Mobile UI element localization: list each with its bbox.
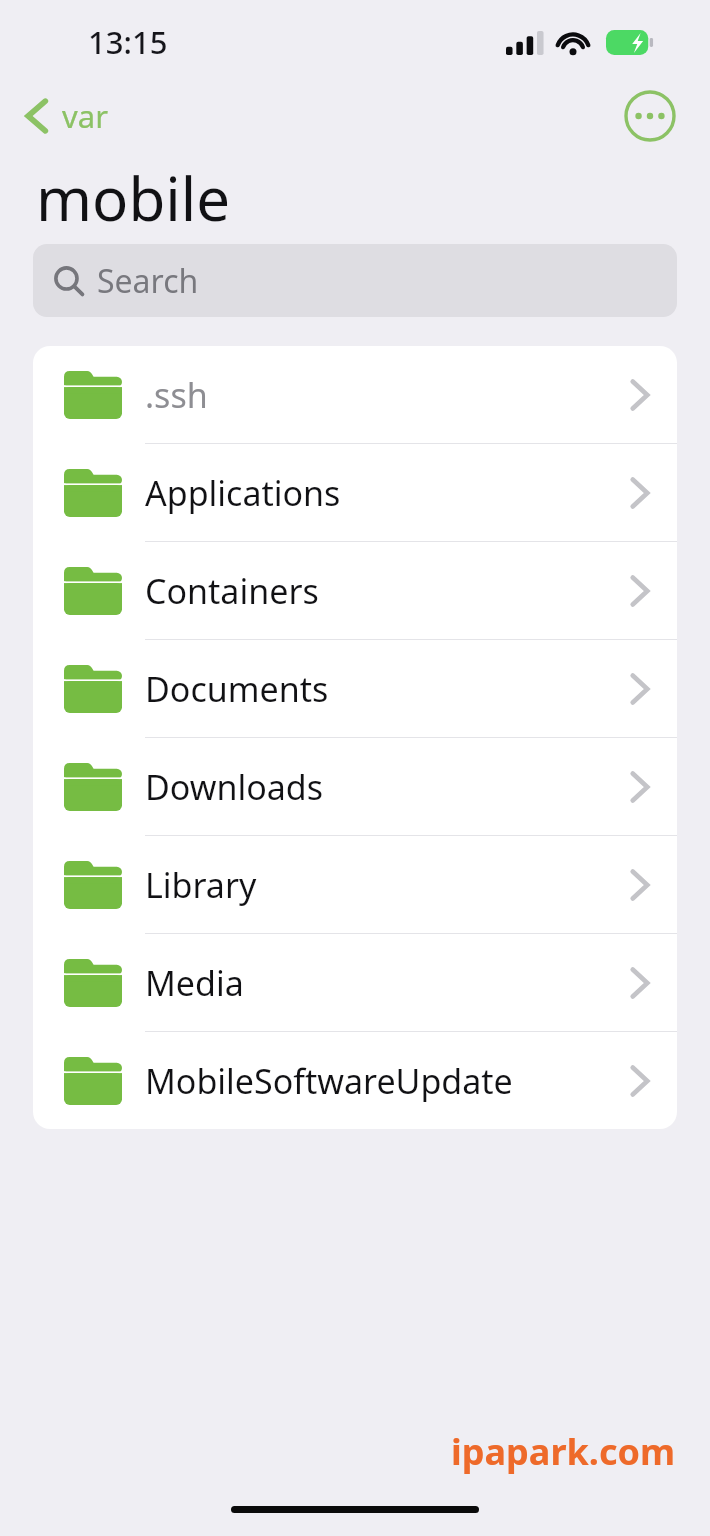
button[interactable]: Applications bbox=[33, 444, 677, 542]
button[interactable]: Media bbox=[33, 934, 677, 1032]
button[interactable]: More options bbox=[624, 90, 676, 142]
button[interactable]: Downloads bbox=[33, 738, 677, 836]
staticText: .ssh bbox=[145, 372, 627, 418]
staticText: var bbox=[62, 95, 108, 137]
button[interactable]: .ssh bbox=[33, 346, 677, 444]
staticText: ipapark.com bbox=[451, 1427, 676, 1476]
staticText: Documents bbox=[145, 666, 627, 712]
staticText: Library bbox=[145, 862, 627, 908]
button[interactable]: Documents bbox=[33, 640, 677, 738]
button[interactable]: MobileSoftwareUpdate bbox=[33, 1032, 677, 1129]
staticText: Search bbox=[97, 259, 199, 303]
button[interactable]: Containers bbox=[33, 542, 677, 640]
button[interactable]: var bbox=[18, 89, 114, 143]
staticText: Containers bbox=[145, 568, 627, 614]
staticText: MobileSoftwareUpdate bbox=[145, 1058, 627, 1104]
staticText: Media bbox=[145, 960, 627, 1006]
staticText: Downloads bbox=[145, 764, 627, 810]
button[interactable]: Search bbox=[33, 244, 677, 317]
button[interactable]: Library bbox=[33, 836, 677, 934]
staticText: mobile bbox=[36, 157, 231, 239]
staticText: Applications bbox=[145, 470, 627, 516]
staticText: 13:15 bbox=[88, 21, 168, 63]
